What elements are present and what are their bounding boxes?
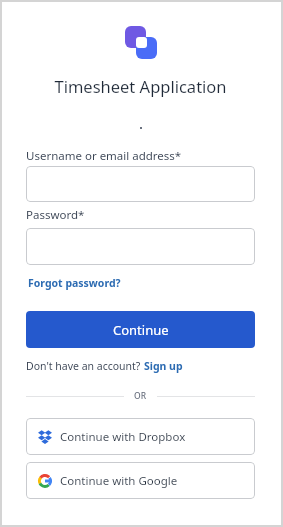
staticText: Timesheet Application (26, 75, 255, 97)
staticText: Continue with Google (60, 473, 178, 489)
button[interactable]: Continue (26, 311, 255, 348)
button[interactable] (26, 166, 255, 202)
staticText: Continue with Dropbox (60, 429, 186, 445)
staticText: OR (134, 390, 147, 402)
staticText: Don't have an account? (26, 359, 141, 373)
button[interactable]: Forgot password? (28, 276, 121, 290)
staticText: Password* (26, 207, 85, 223)
staticText: Username or email address* (26, 148, 182, 164)
button[interactable]: Continue with Google (26, 462, 255, 499)
button[interactable]: Continue with Dropbox (26, 418, 255, 455)
staticText: Continue (113, 321, 169, 339)
button[interactable]: Sign up (144, 359, 183, 373)
button[interactable] (26, 228, 255, 265)
